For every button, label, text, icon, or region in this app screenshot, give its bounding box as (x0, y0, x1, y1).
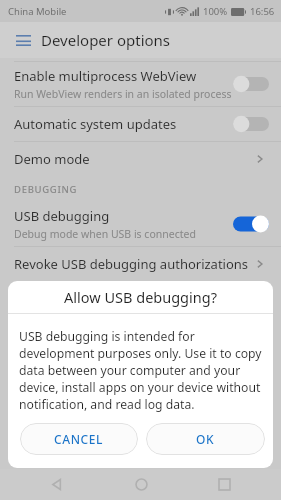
staticText: 100% (203, 5, 228, 18)
button[interactable]: Open (251, 150, 269, 168)
staticText: Enable multiprocess WebView (14, 67, 197, 85)
staticText: Demo mode (14, 150, 90, 168)
button[interactable]: Recent apps (198, 469, 250, 500)
button[interactable]: Toggle on (233, 215, 269, 233)
staticText: Revoke USB debugging authorizations (14, 255, 249, 273)
staticText: USB debugging is intended for developmen… (19, 328, 262, 413)
staticText: Allow USB debugging? (64, 287, 217, 307)
button[interactable]: Automatic system updates (0, 107, 281, 141)
button[interactable]: Home (115, 469, 167, 500)
button[interactable]: Open navigation drawer (10, 27, 36, 53)
button[interactable]: Open (251, 255, 269, 273)
staticText: USB debugging (14, 207, 110, 225)
button[interactable]: Toggle off (233, 75, 269, 93)
button[interactable]: Back (31, 469, 83, 500)
button[interactable]: OK (146, 423, 265, 455)
staticText: Developer options (41, 30, 171, 50)
button[interactable]: Revoke USB debugging authorizations (0, 247, 281, 281)
button[interactable]: CANCEL (20, 423, 138, 455)
button[interactable]: Toggle off (233, 115, 269, 133)
staticText: Run WebView renders in an isolated proce… (14, 87, 232, 101)
staticText: DEBUGGING (14, 183, 78, 196)
button[interactable]: Demo mode (0, 142, 281, 176)
staticText: OK (196, 431, 215, 447)
staticText: CANCEL (54, 431, 104, 447)
staticText: Debug mode when USB is connected (14, 227, 196, 241)
button[interactable]: Enable multiprocess WebView (0, 62, 281, 106)
staticText: 16:56 (250, 5, 275, 18)
staticText: Automatic system updates (14, 115, 177, 133)
button[interactable]: USB debugging (0, 202, 281, 246)
staticText: China Mobile (8, 5, 67, 18)
